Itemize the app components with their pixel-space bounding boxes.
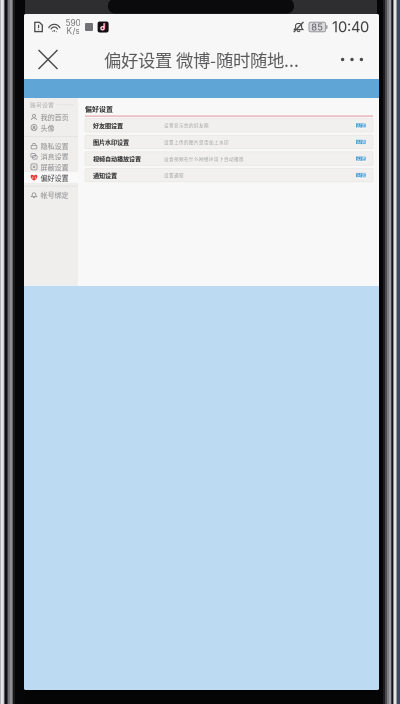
button[interactable]: 隐私设置: [24, 140, 78, 151]
button[interactable]: 帐号绑定: [24, 189, 78, 200]
staticText: 偏好设置: [85, 103, 113, 113]
staticText: 设置视频在什么网络环境下自动播放: [164, 155, 244, 162]
staticText: 图片水印设置: [93, 137, 129, 146]
button[interactable]: 更多: [325, 40, 379, 79]
button[interactable]: 我的首页: [24, 112, 78, 122]
staticText: 设置通知: [164, 172, 184, 178]
button[interactable]: 图片水印设置: [85, 135, 373, 149]
staticText: 10:40: [332, 18, 369, 36]
button[interactable]: 消息设置: [24, 151, 78, 162]
staticText: 消息设置: [40, 151, 68, 161]
staticText: 帐号绑定: [40, 189, 68, 200]
staticText: 我的首页: [40, 112, 68, 122]
staticText: 账号设置: [30, 100, 54, 109]
button[interactable]: 头像: [24, 122, 78, 133]
button[interactable]: 屏蔽设置: [24, 162, 78, 172]
staticText: 头像: [40, 122, 54, 133]
staticText: K/s: [66, 26, 79, 36]
staticText: 设置显示您的好友圈: [164, 122, 209, 129]
staticText: 设置: [356, 138, 366, 146]
staticText: 通知设置: [93, 171, 117, 180]
staticText: 设置上传的图片是否加上水印: [164, 139, 229, 145]
staticText: 偏好设置 微博-随时随地...: [104, 47, 299, 72]
staticText: 85: [311, 21, 323, 33]
staticText: 视频自动播放设置: [93, 154, 141, 163]
staticText: 设置: [356, 155, 366, 162]
button[interactable]: 视频自动播放设置: [85, 152, 373, 165]
button[interactable]: 偏好设置: [24, 172, 78, 183]
button[interactable]: 好友圈设置: [85, 119, 373, 132]
button[interactable]: 关闭: [24, 40, 72, 79]
staticText: 偏好设置: [40, 172, 68, 183]
staticText: 设置: [356, 121, 366, 129]
button[interactable]: 通知设置: [85, 168, 373, 182]
staticText: 屏蔽设置: [40, 162, 68, 172]
staticText: 设置: [356, 171, 366, 179]
staticText: 590: [65, 18, 80, 28]
staticText: 隐私设置: [40, 140, 68, 151]
staticText: 好友圈设置: [93, 121, 123, 130]
